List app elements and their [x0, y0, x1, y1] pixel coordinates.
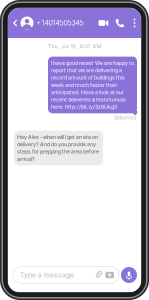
staticText: Hey Alex - when will I get an eta on del…: [17, 134, 99, 162]
button[interactable]: Record voice message: [121, 267, 137, 283]
button[interactable]: More options: [128, 8, 141, 38]
staticText: Delivered: [114, 115, 136, 121]
button[interactable]: Type a message: [13, 266, 119, 283]
button[interactable]: Back: [8, 8, 33, 38]
staticText: I have good news! We are happy to report…: [51, 60, 134, 110]
staticText: Type a message: [20, 271, 74, 279]
button[interactable]: Video call: [95, 8, 112, 38]
staticText: Thu, Jul 15, 6:07 AM: [47, 43, 101, 50]
button[interactable]: Call: [112, 8, 128, 38]
staticText: +14014505345: [36, 19, 83, 27]
